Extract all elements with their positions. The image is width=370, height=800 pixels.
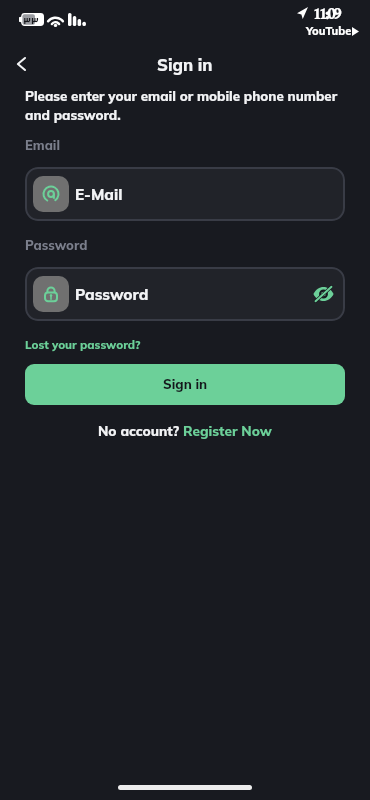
staticText: Password xyxy=(25,237,88,253)
button[interactable]: Sign in xyxy=(25,364,345,405)
staticText: E-Mail xyxy=(75,185,123,204)
button[interactable]: Lost your password? xyxy=(25,337,141,351)
button[interactable]: Toggle password visibility xyxy=(307,278,339,310)
staticText: Sign in xyxy=(157,54,213,75)
staticText: Sign in xyxy=(163,376,208,393)
staticText: YouTube xyxy=(306,24,352,38)
button[interactable]: Password xyxy=(25,267,345,321)
staticText: Email xyxy=(25,137,60,153)
button[interactable]: E-Mail xyxy=(25,167,345,221)
button[interactable]: Back xyxy=(6,49,36,79)
staticText: Please enter your email or mobile phone … xyxy=(25,88,346,124)
staticText: Password xyxy=(75,285,149,304)
button[interactable]: No account? Register Now xyxy=(98,422,272,439)
staticText: 11:09 xyxy=(313,0,340,29)
staticText: ٣٣ xyxy=(23,11,39,24)
